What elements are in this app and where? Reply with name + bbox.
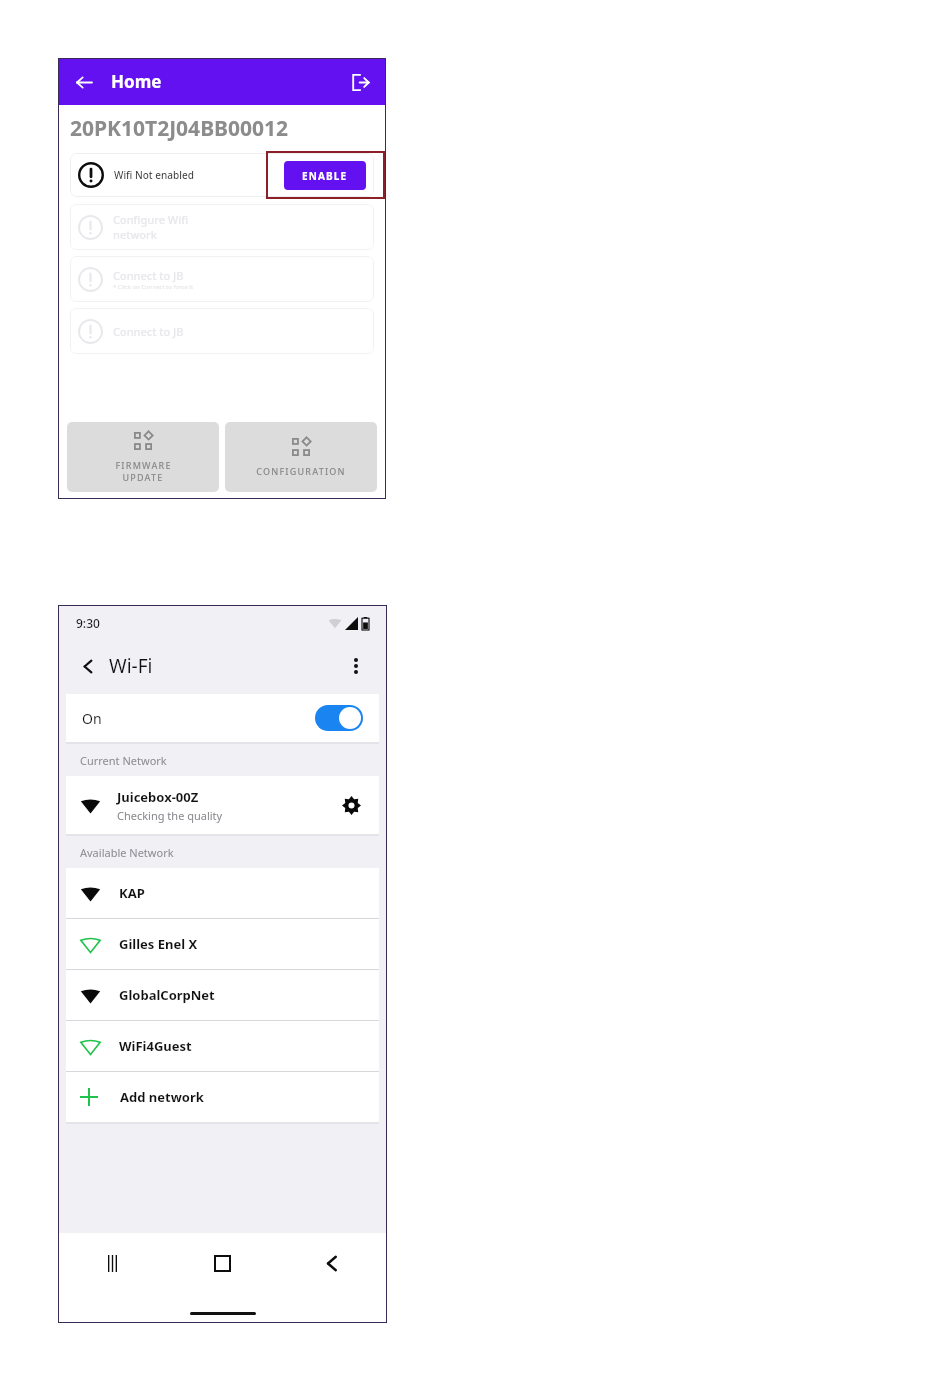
staticText: Available Network: [80, 845, 174, 860]
button[interactable]: Wi-Fi on toggle: [315, 705, 363, 731]
staticText: KAP: [119, 884, 145, 902]
button[interactable]: Connect to JB: [70, 256, 374, 302]
button[interactable]: KAP: [66, 868, 379, 918]
button[interactable]: Wifi Not enabled: [70, 153, 374, 197]
staticText: Wi-Fi: [109, 653, 153, 679]
staticText: UPDATE: [122, 471, 164, 483]
button[interactable]: Back: [76, 654, 100, 678]
staticText: WiFi4Guest: [119, 1037, 192, 1055]
staticText: Juicebox-00Z: [117, 788, 199, 806]
button[interactable]: Connect to JB: [70, 308, 374, 354]
staticText: 9:30: [76, 615, 100, 631]
staticText: CONFIGURATION: [256, 465, 346, 477]
staticText: Wifi Not enabled: [114, 168, 194, 182]
button[interactable]: ENABLE: [284, 161, 366, 190]
button[interactable]: Recents: [58, 1233, 167, 1293]
button[interactable]: More options: [343, 653, 369, 679]
staticText: network: [113, 227, 157, 242]
staticText: Home: [111, 70, 162, 93]
button[interactable]: FIRMWARE: [67, 422, 219, 492]
staticText: 20PK10T2J04BB00012: [70, 114, 289, 143]
button[interactable]: Network settings: [337, 791, 365, 819]
staticText: FIRMWARE: [115, 459, 172, 471]
button[interactable]: CONFIGURATION: [225, 422, 377, 492]
button[interactable]: GlobalCorpNet: [66, 970, 379, 1020]
button[interactable]: Back: [71, 69, 97, 95]
button[interactable]: Logout: [347, 69, 373, 95]
button[interactable]: Back: [277, 1233, 387, 1293]
staticText: * Click on Connect to force it: [113, 283, 194, 291]
staticText: Add network: [120, 1088, 204, 1106]
staticText: Configure Wifi: [113, 212, 189, 227]
staticText: On: [82, 709, 102, 728]
button[interactable]: Juicebox-00Z: [66, 776, 379, 834]
staticText: Checking the quality: [117, 808, 223, 823]
button[interactable]: Home: [167, 1233, 277, 1293]
button[interactable]: On: [66, 694, 379, 742]
button[interactable]: Configure Wifi: [70, 204, 374, 250]
staticText: Connect to JB: [113, 324, 184, 339]
staticText: Gilles Enel X: [119, 935, 198, 953]
staticText: ENABLE: [302, 169, 348, 183]
button[interactable]: Add network: [66, 1072, 379, 1122]
staticText: GlobalCorpNet: [119, 986, 215, 1004]
staticText: Connect to JB: [113, 268, 184, 283]
button[interactable]: Gilles Enel X: [66, 919, 379, 969]
button[interactable]: WiFi4Guest: [66, 1021, 379, 1071]
staticText: Current Network: [80, 753, 167, 768]
